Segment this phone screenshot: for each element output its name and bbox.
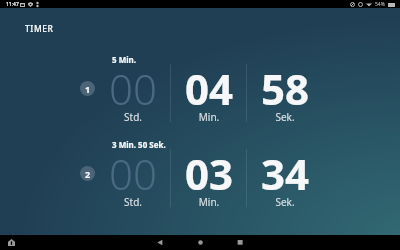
staticText: Sek. <box>249 110 321 124</box>
staticText: Sek. <box>249 195 321 209</box>
staticText: 34 <box>249 145 321 202</box>
staticText: Min. <box>173 110 245 124</box>
staticText: Min. <box>173 195 245 209</box>
staticText: 58 <box>249 60 321 117</box>
staticText: 11:47 <box>6 1 19 8</box>
staticText: 2 <box>85 168 91 180</box>
button[interactable]: 3 Min. 50 Sek. <box>0 138 400 210</box>
staticText: 5 Min. <box>112 54 137 65</box>
button[interactable]: Screenshot <box>8 239 15 246</box>
staticText: Std. <box>97 110 169 124</box>
staticText: 3 Min. 50 Sek. <box>112 139 166 150</box>
staticText: 54% <box>375 1 385 8</box>
button[interactable]: Back <box>153 236 166 249</box>
button[interactable]: 5 Min. <box>0 53 400 125</box>
staticText: 03 <box>173 145 245 202</box>
staticText: 00 <box>97 60 169 117</box>
staticText: 00 <box>97 145 169 202</box>
button[interactable]: Recents <box>233 236 246 249</box>
staticText: TIMER <box>25 23 54 35</box>
button[interactable]: Home <box>194 236 207 249</box>
staticText: Std. <box>97 195 169 209</box>
staticText: 04 <box>173 60 245 117</box>
staticText: 1 <box>85 83 91 95</box>
